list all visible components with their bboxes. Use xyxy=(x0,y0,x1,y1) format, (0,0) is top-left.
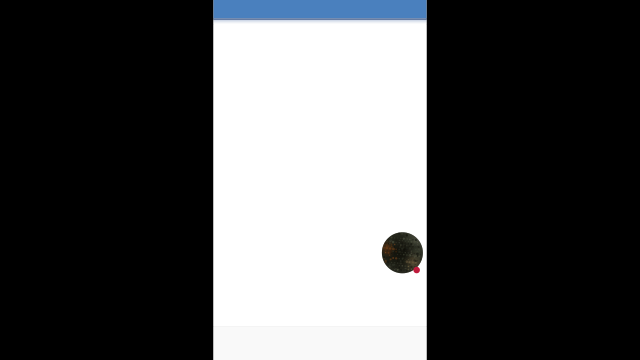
button[interactable]: Profile xyxy=(382,232,423,273)
